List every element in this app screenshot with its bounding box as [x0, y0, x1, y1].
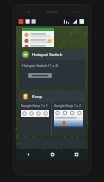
button[interactable]: Recents [64, 149, 88, 160]
staticText: Hotspot Switch [32, 52, 63, 58]
staticText: Google Keep 1 x 1 [21, 104, 48, 108]
button[interactable]: Hotspot Switch (1 x 2) [19, 60, 85, 89]
button[interactable]: Home [40, 149, 64, 160]
staticText: Hotspot Switch (1 x 2) [22, 63, 59, 68]
staticText: Google Keep 1 x 2 [54, 104, 81, 108]
button[interactable]: Google Keep 1 x 2 [52, 102, 85, 136]
button[interactable] [22, 28, 54, 47]
staticText: Keep [32, 94, 43, 100]
button[interactable]: Google Keep 1 x 1 [19, 102, 51, 136]
button[interactable]: Keep [19, 91, 85, 102]
button[interactable]: Back [16, 149, 40, 160]
button[interactable]: Hotspot Switch [19, 49, 85, 60]
